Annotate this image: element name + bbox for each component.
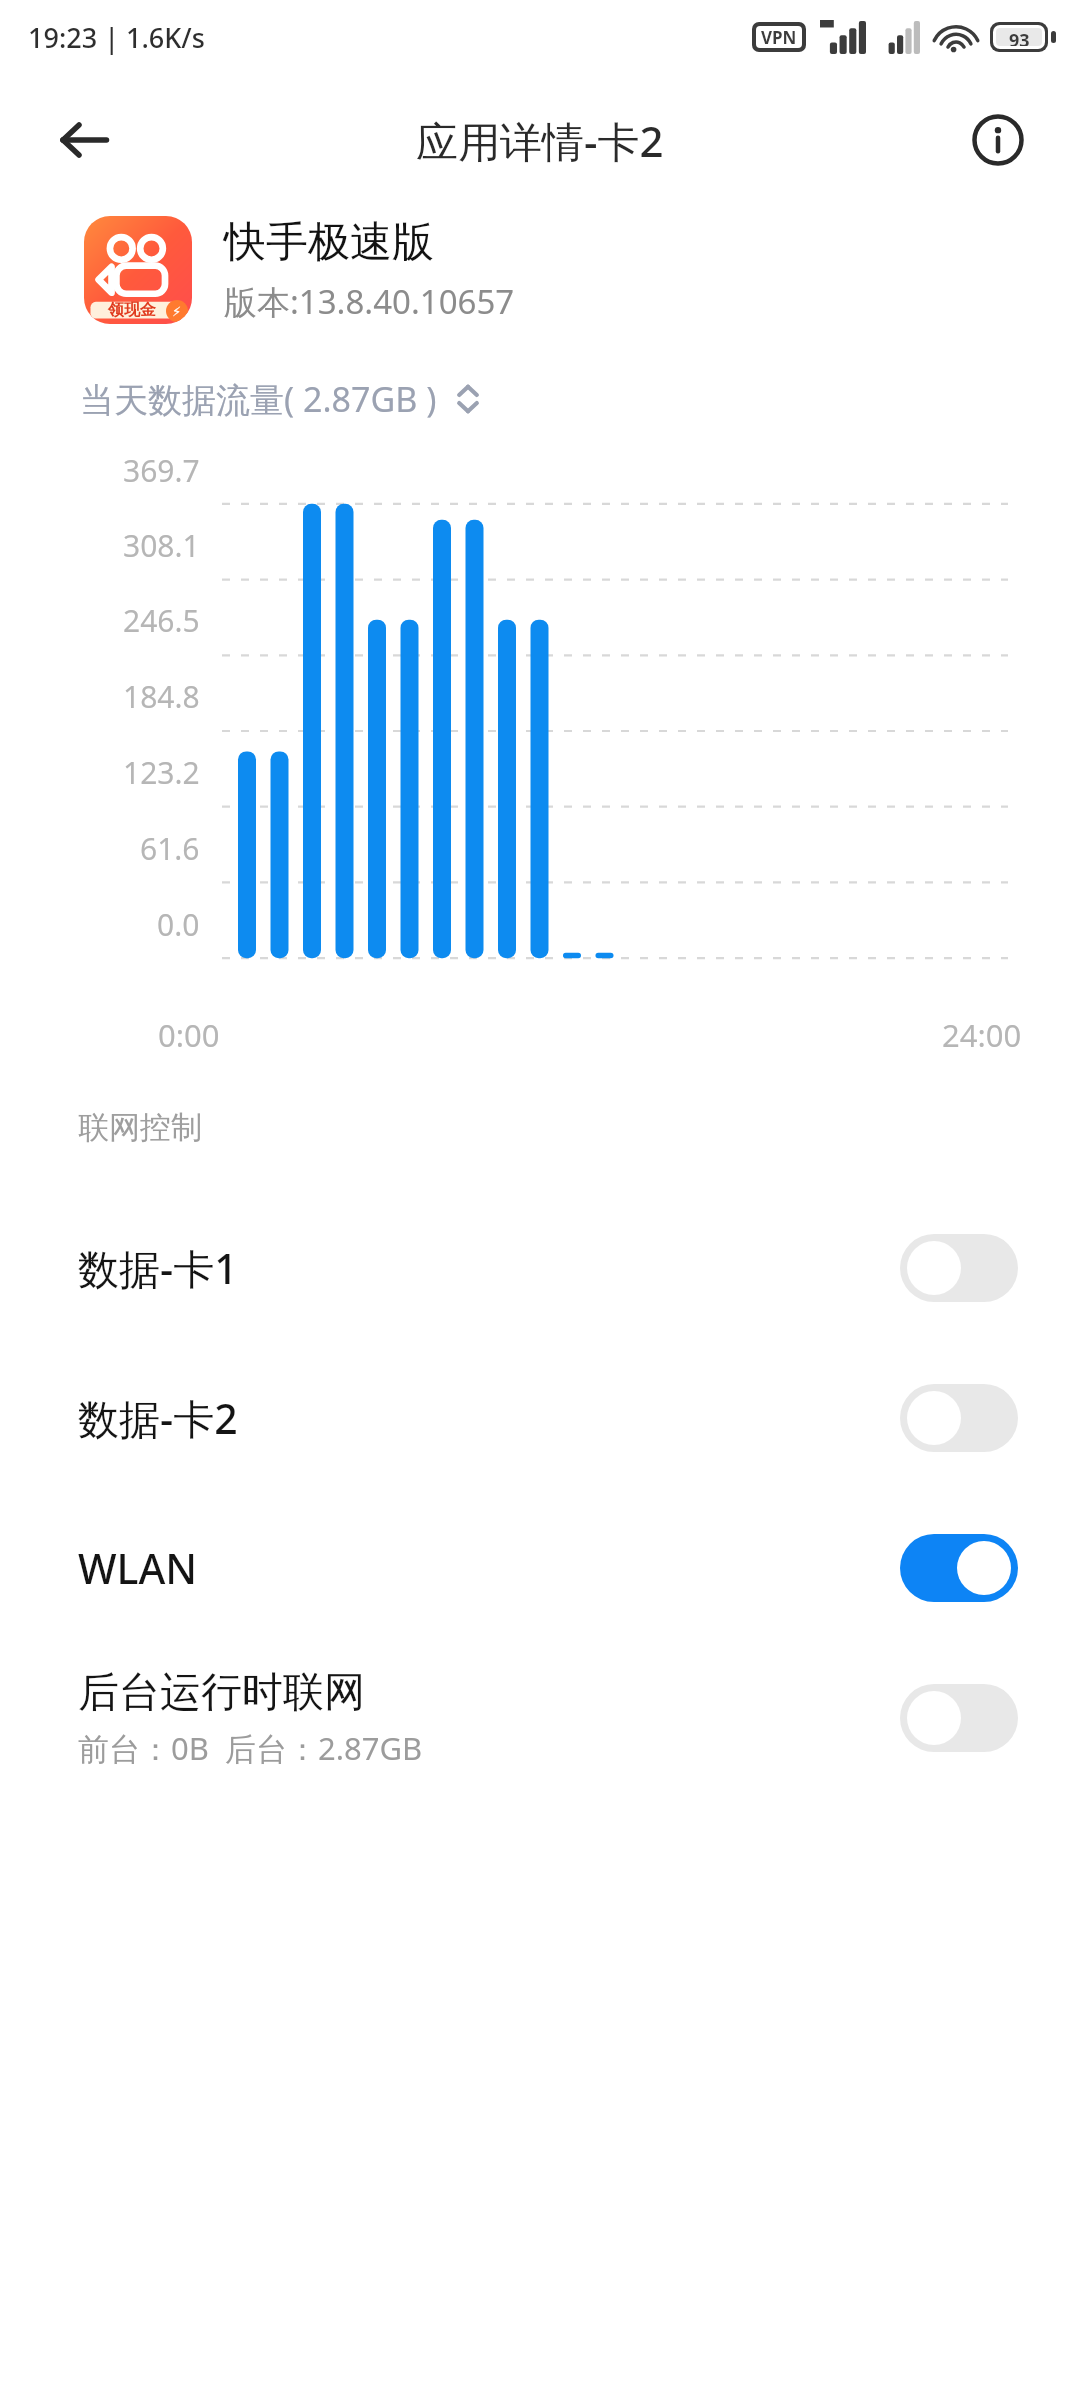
staticText: 19:23 | 1.6K/s <box>28 19 205 56</box>
staticText: 369.7 <box>123 450 200 491</box>
button[interactable]: 已关闭 <box>900 1684 1018 1752</box>
staticText: VPN <box>761 26 797 48</box>
staticText: 联网控制 <box>78 1108 202 1147</box>
button[interactable]: 详细信息 <box>960 102 1036 178</box>
staticText: 0:00 <box>158 1014 220 1056</box>
button[interactable]: 已关闭 <box>900 1384 1018 1452</box>
staticText: 快手极速版 <box>224 216 434 269</box>
staticText: 前台：0B 后台：2.87GB <box>78 1727 423 1769</box>
staticText: 数据-卡2 <box>78 1390 238 1446</box>
staticText: 184.8 <box>123 676 200 717</box>
button[interactable]: WLAN <box>0 1493 1080 1643</box>
staticText: 数据-卡1 <box>78 1240 238 1296</box>
staticText: 领现金 <box>108 300 156 320</box>
button[interactable]: 已开启 <box>900 1534 1018 1602</box>
staticText: 123.2 <box>123 752 200 793</box>
staticText: 0.0 <box>157 904 200 945</box>
staticText: 当天数据流量( 2.87GB ) <box>80 376 437 422</box>
staticText: 93 <box>1009 28 1030 46</box>
button[interactable]: 后台运行时联网 <box>0 1643 1080 1793</box>
button[interactable]: 返回 <box>46 102 122 178</box>
staticText: 应用详情-卡2 <box>416 112 664 169</box>
staticText: 246.5 <box>123 600 200 641</box>
staticText: 308.1 <box>123 525 200 566</box>
staticText: 61.6 <box>140 828 200 869</box>
staticText: 24:00 <box>942 1014 1022 1056</box>
staticText: ⚡ <box>172 304 182 319</box>
button[interactable]: 数据-卡1 <box>0 1193 1080 1343</box>
button[interactable]: 数据-卡2 <box>0 1343 1080 1493</box>
staticText: WLAN <box>78 1540 198 1596</box>
button[interactable]: 当天数据流量( 2.87GB ) <box>78 370 483 428</box>
button[interactable]: 已关闭 <box>900 1234 1018 1302</box>
staticText: 后台运行时联网 <box>78 1667 365 1719</box>
staticText: 版本:13.8.40.10657 <box>224 279 515 324</box>
